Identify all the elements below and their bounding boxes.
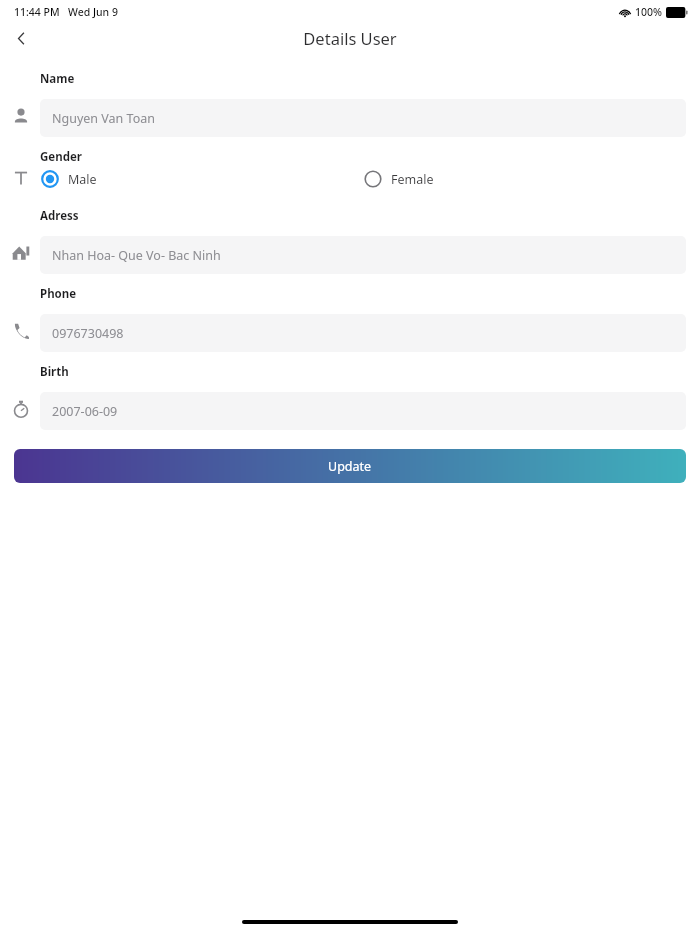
staticText: Update xyxy=(328,458,372,475)
staticText: 11:44 PM xyxy=(14,5,60,19)
staticText: Adress xyxy=(40,208,79,224)
button[interactable]: Update xyxy=(14,449,686,483)
staticText: Female xyxy=(391,171,434,188)
other: Birth xyxy=(10,398,32,420)
button[interactable]: 2007-06-09 xyxy=(40,392,686,430)
button[interactable]: Male xyxy=(40,169,363,189)
button[interactable]: Nguyen Van Toan xyxy=(40,99,686,137)
staticText: Nhan Hoa- Que Vo- Bac Ninh xyxy=(52,247,221,264)
staticText: Wed Jun 9 xyxy=(68,5,118,19)
staticText: Details User xyxy=(303,27,397,49)
staticText: Male xyxy=(68,171,97,188)
staticText: 100% xyxy=(635,5,662,19)
staticText: Nguyen Van Toan xyxy=(52,110,155,127)
other: Phone xyxy=(10,320,32,342)
button[interactable]: Nhan Hoa- Que Vo- Bac Ninh xyxy=(40,236,686,274)
staticText: 2007-06-09 xyxy=(52,403,118,420)
other: Gender xyxy=(10,167,32,189)
button[interactable]: Female xyxy=(363,169,686,189)
button[interactable]: 0976730498 xyxy=(40,314,686,352)
button[interactable]: Back xyxy=(6,24,36,52)
other: Address xyxy=(10,242,32,264)
other: Name xyxy=(10,105,32,127)
staticText: Gender xyxy=(40,149,82,165)
staticText: Name xyxy=(40,71,75,87)
staticText: 0976730498 xyxy=(52,325,124,342)
staticText: Phone xyxy=(40,286,77,302)
staticText: Birth xyxy=(40,364,69,380)
